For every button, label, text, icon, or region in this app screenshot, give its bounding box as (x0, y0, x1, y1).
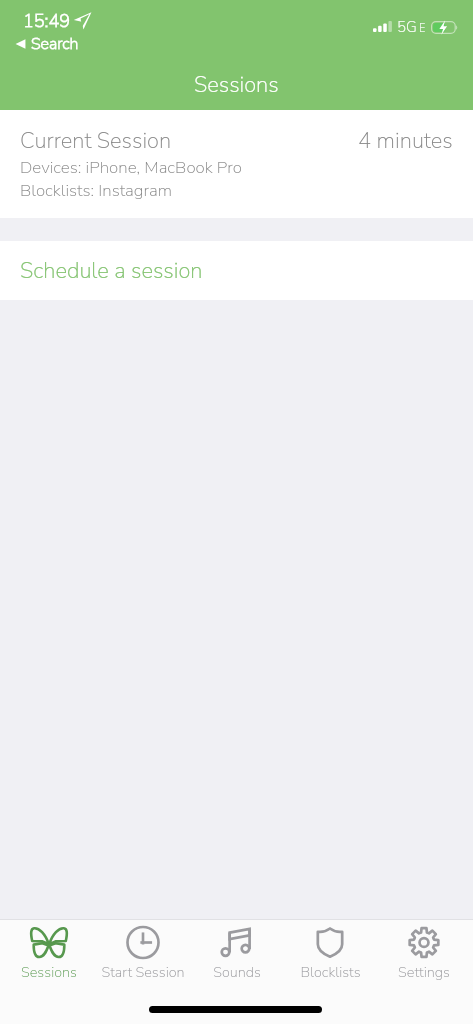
staticText: Sounds (213, 962, 261, 982)
staticText: Current Session (20, 126, 172, 156)
staticText: Sessions (194, 70, 279, 100)
staticText: Devices: iPhone, MacBook Pro (20, 156, 242, 179)
staticText: 5G (397, 17, 417, 37)
button[interactable]: Sessions (4, 926, 94, 982)
staticText: Settings (398, 962, 450, 982)
button[interactable]: Start Session (98, 926, 188, 982)
staticText: Start Session (101, 962, 185, 982)
staticText: Sessions (21, 962, 77, 982)
staticText: 15:49 (23, 9, 70, 34)
staticText: Schedule a session (20, 256, 203, 286)
button[interactable]: Schedule a session (0, 241, 473, 300)
button[interactable]: Sounds (192, 926, 282, 982)
staticText: Search (31, 33, 79, 55)
staticText: Blocklists: Instagram (20, 179, 172, 202)
button[interactable]: Settings (379, 926, 469, 982)
button[interactable]: Blocklists (285, 926, 375, 982)
button[interactable]: Back to Search (9, 30, 85, 58)
staticText: E (419, 21, 426, 36)
staticText: 4 minutes (358, 126, 453, 156)
button[interactable]: Current Session (0, 110, 473, 218)
staticText: Blocklists (300, 962, 361, 982)
